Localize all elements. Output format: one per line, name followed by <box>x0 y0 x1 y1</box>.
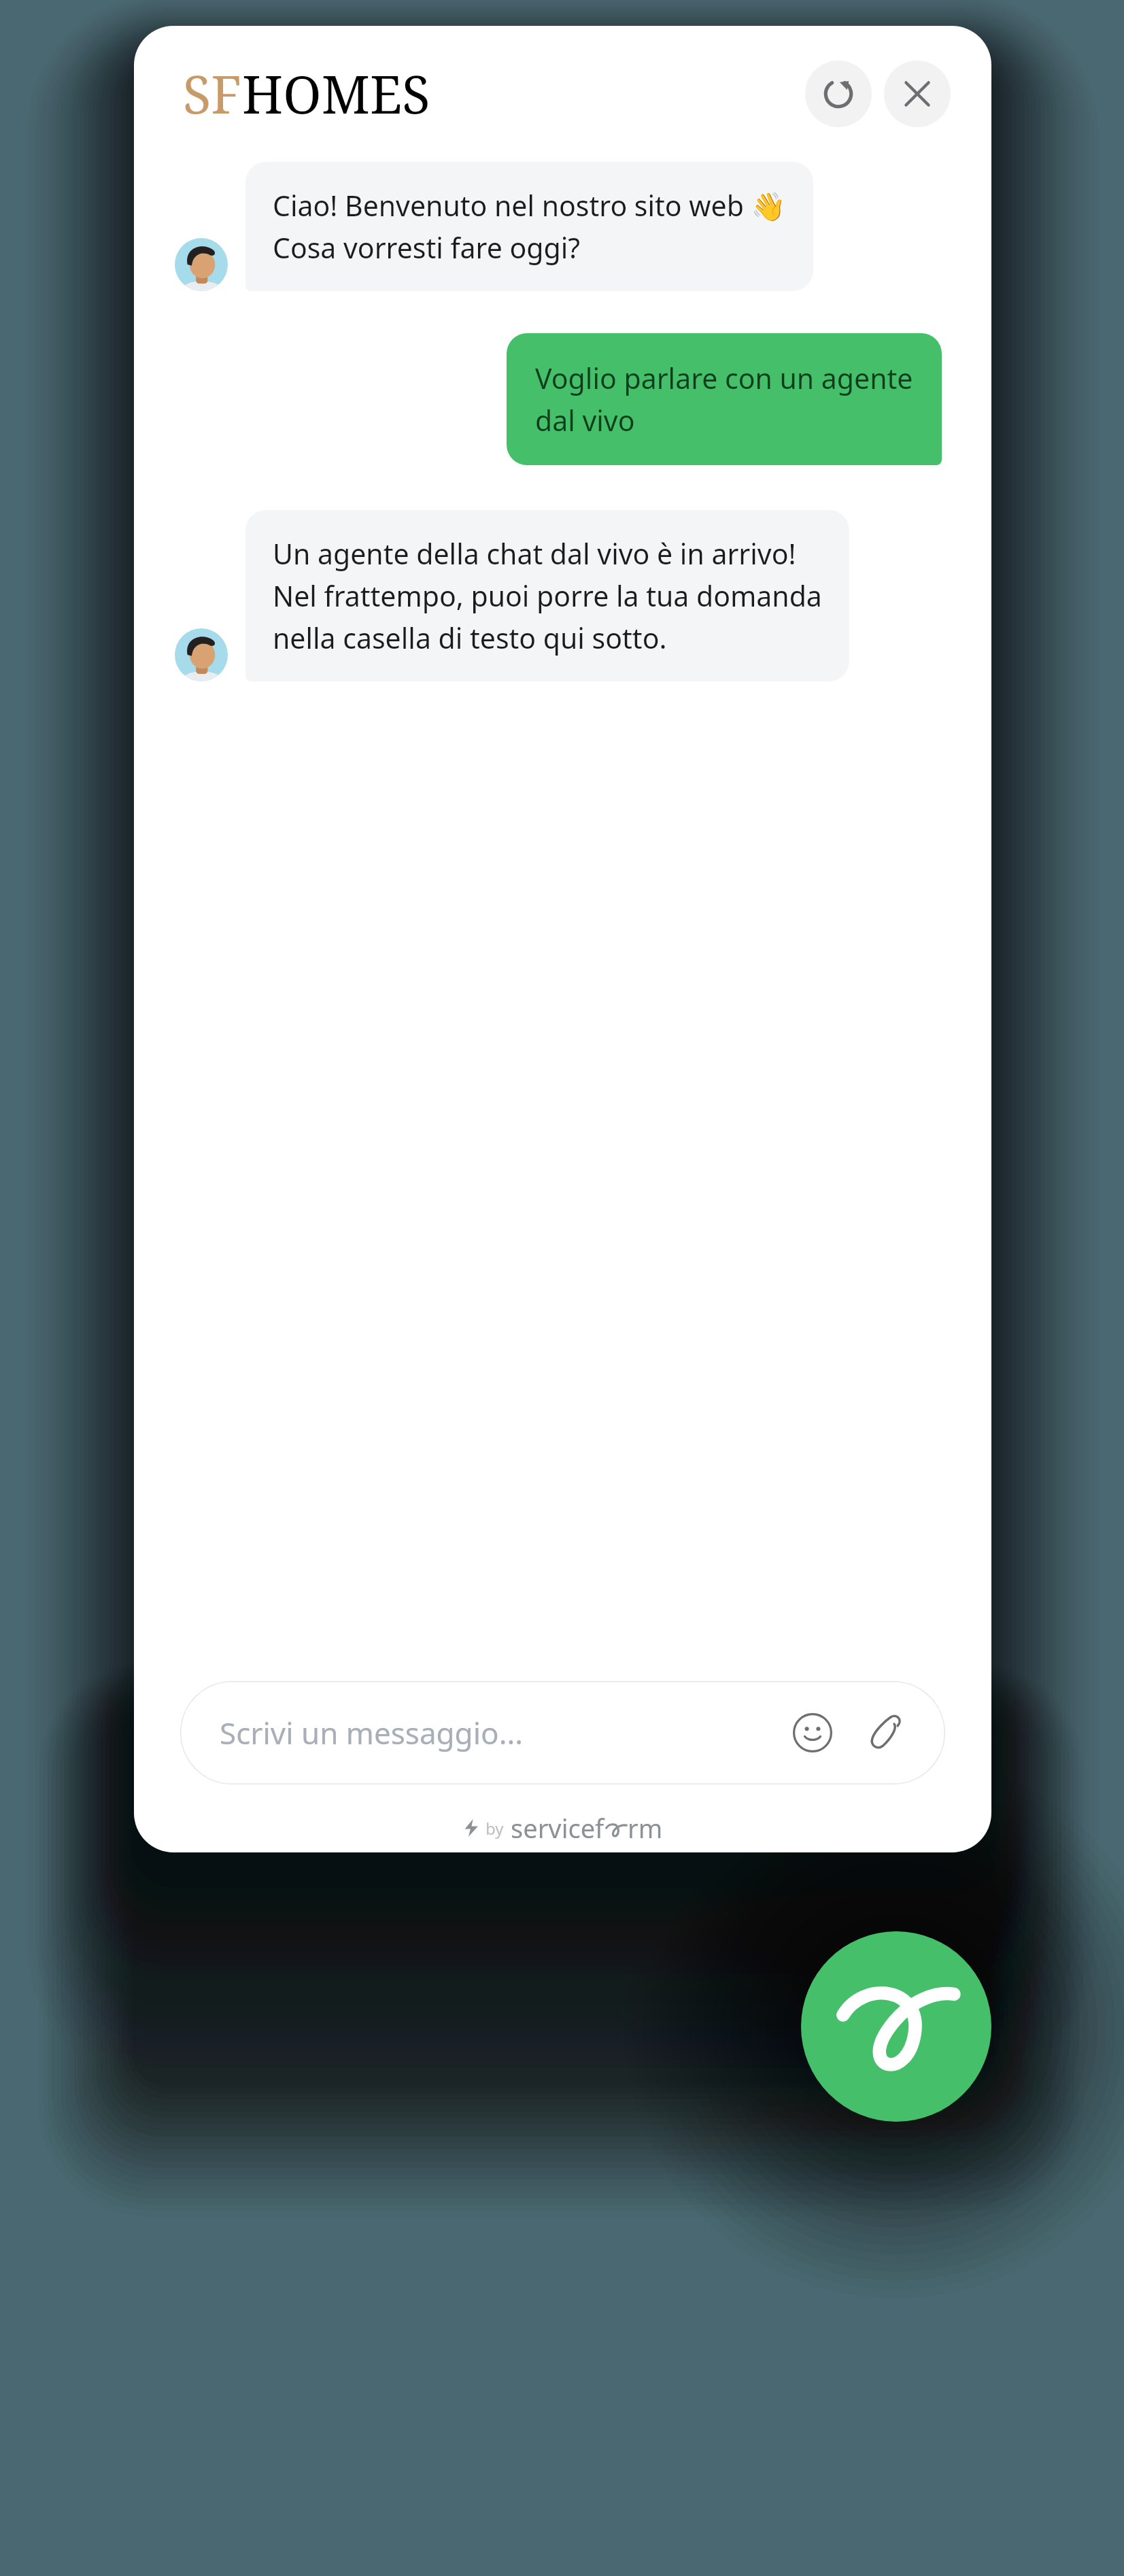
button[interactable]: Ciao! Benvenuto nel nostro sito web 👋 Co… <box>245 162 813 291</box>
staticText: Un agente della chat dal vivo è in arriv… <box>273 535 822 657</box>
staticText: rm <box>628 1810 663 1846</box>
staticText: by <box>486 1817 504 1840</box>
button[interactable]: Refresh <box>805 61 872 127</box>
button[interactable]: Open chat <box>801 1931 991 2122</box>
staticText: servicef <box>511 1810 604 1846</box>
button[interactable]: Attach file <box>859 1708 910 1758</box>
button[interactable]: Close <box>884 61 951 127</box>
button[interactable]: Emoji <box>787 1708 838 1758</box>
button[interactable]: Voglio parlare con un agente dal vivo <box>507 333 942 465</box>
staticText: HOMES <box>242 58 430 129</box>
staticText: Ciao! Benvenuto nel nostro sito web 👋 Co… <box>273 186 786 267</box>
button[interactable]: Scrivi un messaggio... <box>180 1681 945 1784</box>
staticText: Scrivi un messaggio... <box>220 1712 524 1753</box>
staticText: Voglio parlare con un agente dal vivo <box>535 359 913 439</box>
button[interactable]: Un agente della chat dal vivo è in arriv… <box>245 510 849 681</box>
staticText: SF <box>183 58 242 129</box>
